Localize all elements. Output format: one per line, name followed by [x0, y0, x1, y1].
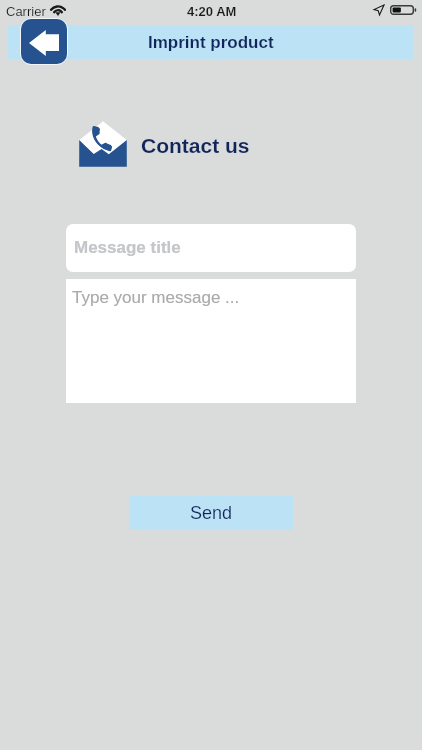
button[interactable]: Send [129, 496, 293, 530]
button[interactable]: Back [19, 17, 68, 66]
staticText: Type your message ... [72, 288, 240, 307]
staticText: Contact us [141, 134, 250, 157]
staticText: Carrier [6, 4, 46, 19]
staticText: Message title [74, 238, 181, 257]
button[interactable]: Type your message ... [66, 279, 356, 403]
staticText: Imprint product [148, 33, 274, 52]
staticText: Send [190, 503, 233, 523]
staticText: 4:20 AM [187, 4, 237, 19]
button[interactable]: Message title [66, 224, 356, 272]
